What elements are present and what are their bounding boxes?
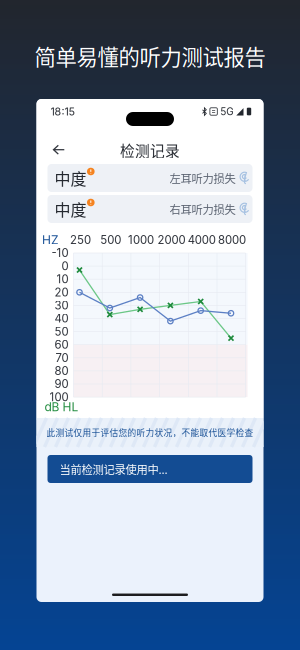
button[interactable]: 当前检测记录使用中... <box>47 455 252 483</box>
staticText: 4000 <box>188 233 216 247</box>
staticText: 70 <box>55 351 68 365</box>
staticText: 当前检测记录使用中... <box>59 461 167 477</box>
staticText: HZ <box>42 233 59 247</box>
staticText: 右耳听力损失 <box>169 201 235 217</box>
staticText: 100 <box>49 390 68 404</box>
staticText: 250 <box>70 233 91 247</box>
staticText: dB HL <box>44 400 78 414</box>
staticText: 80 <box>54 364 68 378</box>
staticText: 10 <box>56 272 68 286</box>
staticText: 简单易懂的听力测试报告 <box>34 41 265 71</box>
staticText: 500 <box>100 233 121 247</box>
staticText: 中度 <box>54 197 86 221</box>
staticText: 检测记录 <box>120 139 180 161</box>
staticText: 此测试仅用于评估您的听力状况，不能取代医学检查 <box>46 426 253 439</box>
staticText: 0 <box>61 259 68 273</box>
staticText: 5G <box>220 105 233 118</box>
staticText: 60 <box>54 338 68 351</box>
staticText: 2000 <box>157 233 185 247</box>
staticText: 18:15 <box>50 105 74 118</box>
staticText: 左耳听力损失 <box>169 170 235 186</box>
button[interactable]: 中度 <box>36 164 263 192</box>
button[interactable]: Back <box>48 140 69 159</box>
staticText: 30 <box>54 298 68 312</box>
staticText: 中度 <box>54 166 86 190</box>
staticText: 50 <box>54 325 68 338</box>
staticText: 1000 <box>128 233 154 247</box>
staticText: 8000 <box>218 233 246 247</box>
button[interactable]: 中度 <box>36 195 263 223</box>
staticText: 20 <box>54 285 68 299</box>
staticText: 90 <box>54 377 68 391</box>
staticText: -10 <box>51 246 68 260</box>
staticText: 40 <box>54 312 68 325</box>
